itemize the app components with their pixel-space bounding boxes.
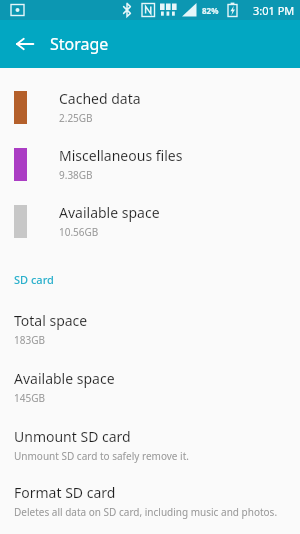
staticText: Available space — [59, 203, 160, 222]
button[interactable]: Cached data — [0, 89, 300, 125]
staticText: Unmount SD card — [14, 427, 131, 446]
button[interactable]: Format SD card — [0, 483, 300, 519]
button[interactable]: Total space — [0, 311, 300, 347]
staticText: Unmount SD card to safely remove it. — [14, 449, 189, 463]
staticText: Available space — [14, 369, 115, 388]
staticText: Deletes all data on SD card, including m… — [14, 505, 278, 519]
staticText: Cached data — [59, 89, 141, 108]
staticText: Total space — [14, 311, 88, 330]
button[interactable]: Available space — [0, 369, 300, 405]
button[interactable]: Navigate up — [7, 26, 43, 62]
staticText: Format SD card — [14, 483, 116, 502]
staticText: 183GB — [14, 333, 45, 347]
staticText: 10.56GB — [59, 225, 99, 239]
staticText: 9.38GB — [59, 168, 93, 182]
staticText: 145GB — [14, 391, 45, 405]
staticText: Miscellaneous files — [59, 146, 183, 165]
staticText: 82% — [202, 5, 219, 16]
staticText: 2.25GB — [59, 111, 93, 125]
staticText: Storage — [50, 33, 109, 55]
button[interactable]: Unmount SD card — [0, 427, 300, 463]
staticText: 3:01 PM — [253, 3, 295, 18]
button[interactable]: Miscellaneous files — [0, 146, 300, 182]
staticText: SD card — [14, 272, 54, 287]
button[interactable]: Available space — [0, 203, 300, 239]
